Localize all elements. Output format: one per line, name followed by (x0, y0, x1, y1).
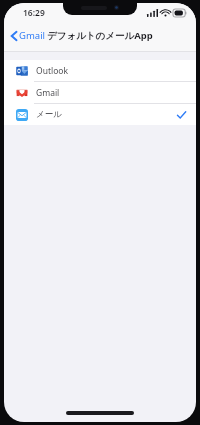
button[interactable]: メール (4, 104, 196, 125)
button[interactable]: Gmail (4, 82, 196, 103)
staticText: 16:29 (23, 7, 45, 19)
staticText: Gmail (36, 87, 60, 99)
staticText: Outlook (36, 65, 68, 77)
button[interactable]: Outlook (4, 60, 196, 81)
staticText: メール (36, 109, 62, 120)
button[interactable]: Gmail (9, 26, 48, 45)
staticText: Gmail (19, 29, 46, 42)
staticText: デフォルトのメールApp (47, 29, 153, 42)
